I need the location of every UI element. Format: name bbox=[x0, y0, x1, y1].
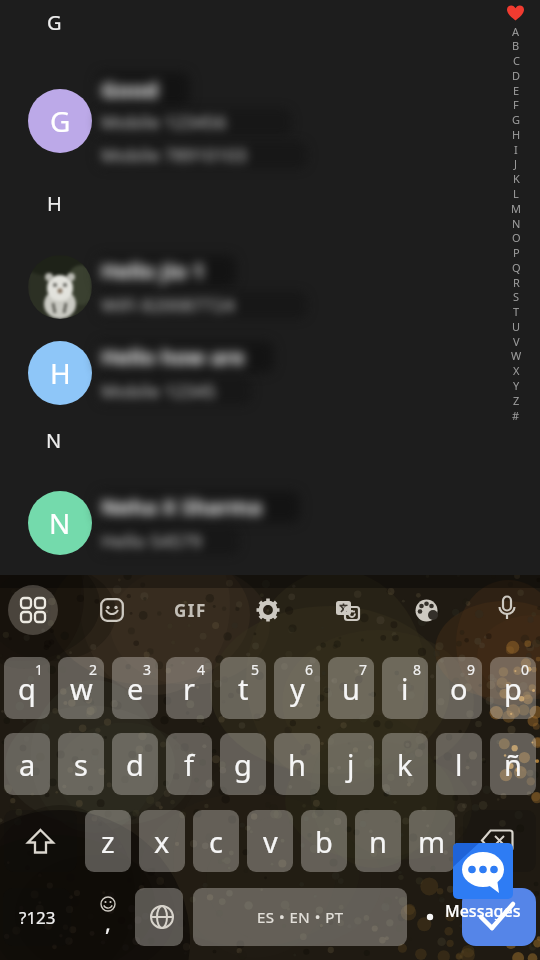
button[interactable] bbox=[166, 733, 212, 795]
staticText: , bbox=[105, 907, 111, 937]
staticText: 0 bbox=[521, 660, 530, 679]
button[interactable] bbox=[112, 733, 158, 795]
button[interactable] bbox=[3, 888, 71, 946]
button[interactable] bbox=[274, 733, 320, 795]
staticText: B bbox=[512, 38, 520, 53]
staticText: M bbox=[511, 201, 521, 216]
button[interactable] bbox=[382, 733, 428, 795]
button[interactable] bbox=[382, 657, 428, 719]
button[interactable] bbox=[139, 810, 185, 872]
button[interactable] bbox=[4, 657, 50, 719]
staticText: d bbox=[126, 745, 144, 784]
button[interactable] bbox=[58, 733, 104, 795]
button[interactable]: N bbox=[34, 426, 74, 454]
staticText: u bbox=[342, 669, 360, 708]
button[interactable] bbox=[414, 598, 439, 623]
button[interactable] bbox=[28, 255, 92, 319]
button[interactable] bbox=[490, 657, 536, 719]
staticText: S bbox=[513, 289, 520, 304]
staticText: H bbox=[512, 127, 521, 142]
button[interactable]: G bbox=[28, 89, 92, 153]
staticText: H bbox=[50, 354, 71, 392]
staticText: z bbox=[101, 822, 115, 861]
button[interactable] bbox=[166, 657, 212, 719]
button[interactable] bbox=[85, 888, 131, 946]
staticText: t bbox=[238, 669, 249, 708]
staticText: F bbox=[513, 97, 519, 112]
staticText: s bbox=[74, 745, 88, 784]
staticText: b bbox=[315, 822, 333, 861]
staticText: Neha X Sharma bbox=[101, 493, 263, 522]
button[interactable] bbox=[336, 599, 360, 623]
staticText: D bbox=[512, 68, 521, 83]
button[interactable]: H bbox=[34, 189, 74, 217]
staticText: T bbox=[513, 304, 520, 319]
staticText: A bbox=[512, 24, 520, 39]
staticText: Hello how are bbox=[101, 343, 245, 372]
staticText: Messages bbox=[445, 900, 521, 920]
staticText: Hello Jio 1 bbox=[101, 257, 205, 286]
button[interactable] bbox=[409, 810, 455, 872]
button[interactable] bbox=[490, 733, 536, 795]
button[interactable] bbox=[328, 733, 374, 795]
button[interactable] bbox=[193, 810, 239, 872]
staticText: Y bbox=[513, 378, 520, 393]
staticText: ES • EN • PT bbox=[257, 907, 344, 927]
staticText: W bbox=[511, 348, 522, 363]
staticText: v bbox=[263, 822, 278, 861]
staticText: R bbox=[513, 275, 520, 290]
staticText: N bbox=[512, 216, 521, 231]
staticText: Mobile 12345 bbox=[101, 379, 216, 404]
button[interactable] bbox=[85, 810, 131, 872]
button[interactable] bbox=[193, 888, 407, 946]
button[interactable] bbox=[436, 733, 482, 795]
button[interactable] bbox=[328, 657, 374, 719]
staticText: g bbox=[234, 745, 252, 784]
button[interactable] bbox=[4, 733, 50, 795]
staticText: G bbox=[50, 102, 71, 140]
button[interactable] bbox=[220, 733, 266, 795]
button[interactable] bbox=[274, 657, 320, 719]
staticText: Z bbox=[513, 393, 520, 408]
button[interactable]: H bbox=[28, 341, 92, 405]
staticText: j bbox=[347, 745, 355, 784]
button[interactable] bbox=[220, 657, 266, 719]
staticText: O bbox=[512, 230, 521, 245]
button[interactable] bbox=[407, 888, 453, 946]
button[interactable]: N bbox=[28, 491, 92, 555]
staticText: Q bbox=[512, 260, 521, 275]
button[interactable] bbox=[100, 598, 124, 622]
staticText: n bbox=[369, 822, 387, 861]
staticText: Hello 54579 bbox=[101, 529, 202, 554]
button[interactable] bbox=[355, 810, 401, 872]
button[interactable] bbox=[4, 810, 77, 872]
staticText: C bbox=[513, 53, 520, 68]
staticText: G bbox=[47, 9, 62, 36]
staticText: 3 bbox=[143, 660, 152, 679]
button[interactable] bbox=[247, 810, 293, 872]
staticText: w bbox=[70, 669, 93, 708]
staticText: m bbox=[418, 822, 446, 861]
button[interactable] bbox=[58, 657, 104, 719]
button[interactable]: G bbox=[34, 8, 74, 36]
button[interactable] bbox=[8, 585, 58, 635]
staticText: WiFi 820087724 bbox=[101, 293, 235, 318]
button[interactable] bbox=[301, 810, 347, 872]
staticText: 6 bbox=[305, 660, 314, 679]
staticText: x bbox=[154, 822, 170, 861]
button[interactable] bbox=[436, 657, 482, 719]
button[interactable] bbox=[496, 595, 518, 625]
button[interactable] bbox=[463, 810, 536, 872]
button[interactable] bbox=[256, 598, 280, 622]
button[interactable] bbox=[453, 843, 513, 899]
staticText: 1 bbox=[35, 660, 44, 679]
button[interactable] bbox=[135, 888, 183, 946]
staticText: 8 bbox=[413, 660, 422, 679]
staticText: U bbox=[512, 319, 521, 334]
staticText: k bbox=[397, 745, 413, 784]
staticText: c bbox=[209, 822, 223, 861]
staticText: Good bbox=[101, 74, 159, 104]
button[interactable] bbox=[462, 888, 536, 946]
button[interactable]: GIF bbox=[168, 598, 212, 622]
button[interactable] bbox=[112, 657, 158, 719]
